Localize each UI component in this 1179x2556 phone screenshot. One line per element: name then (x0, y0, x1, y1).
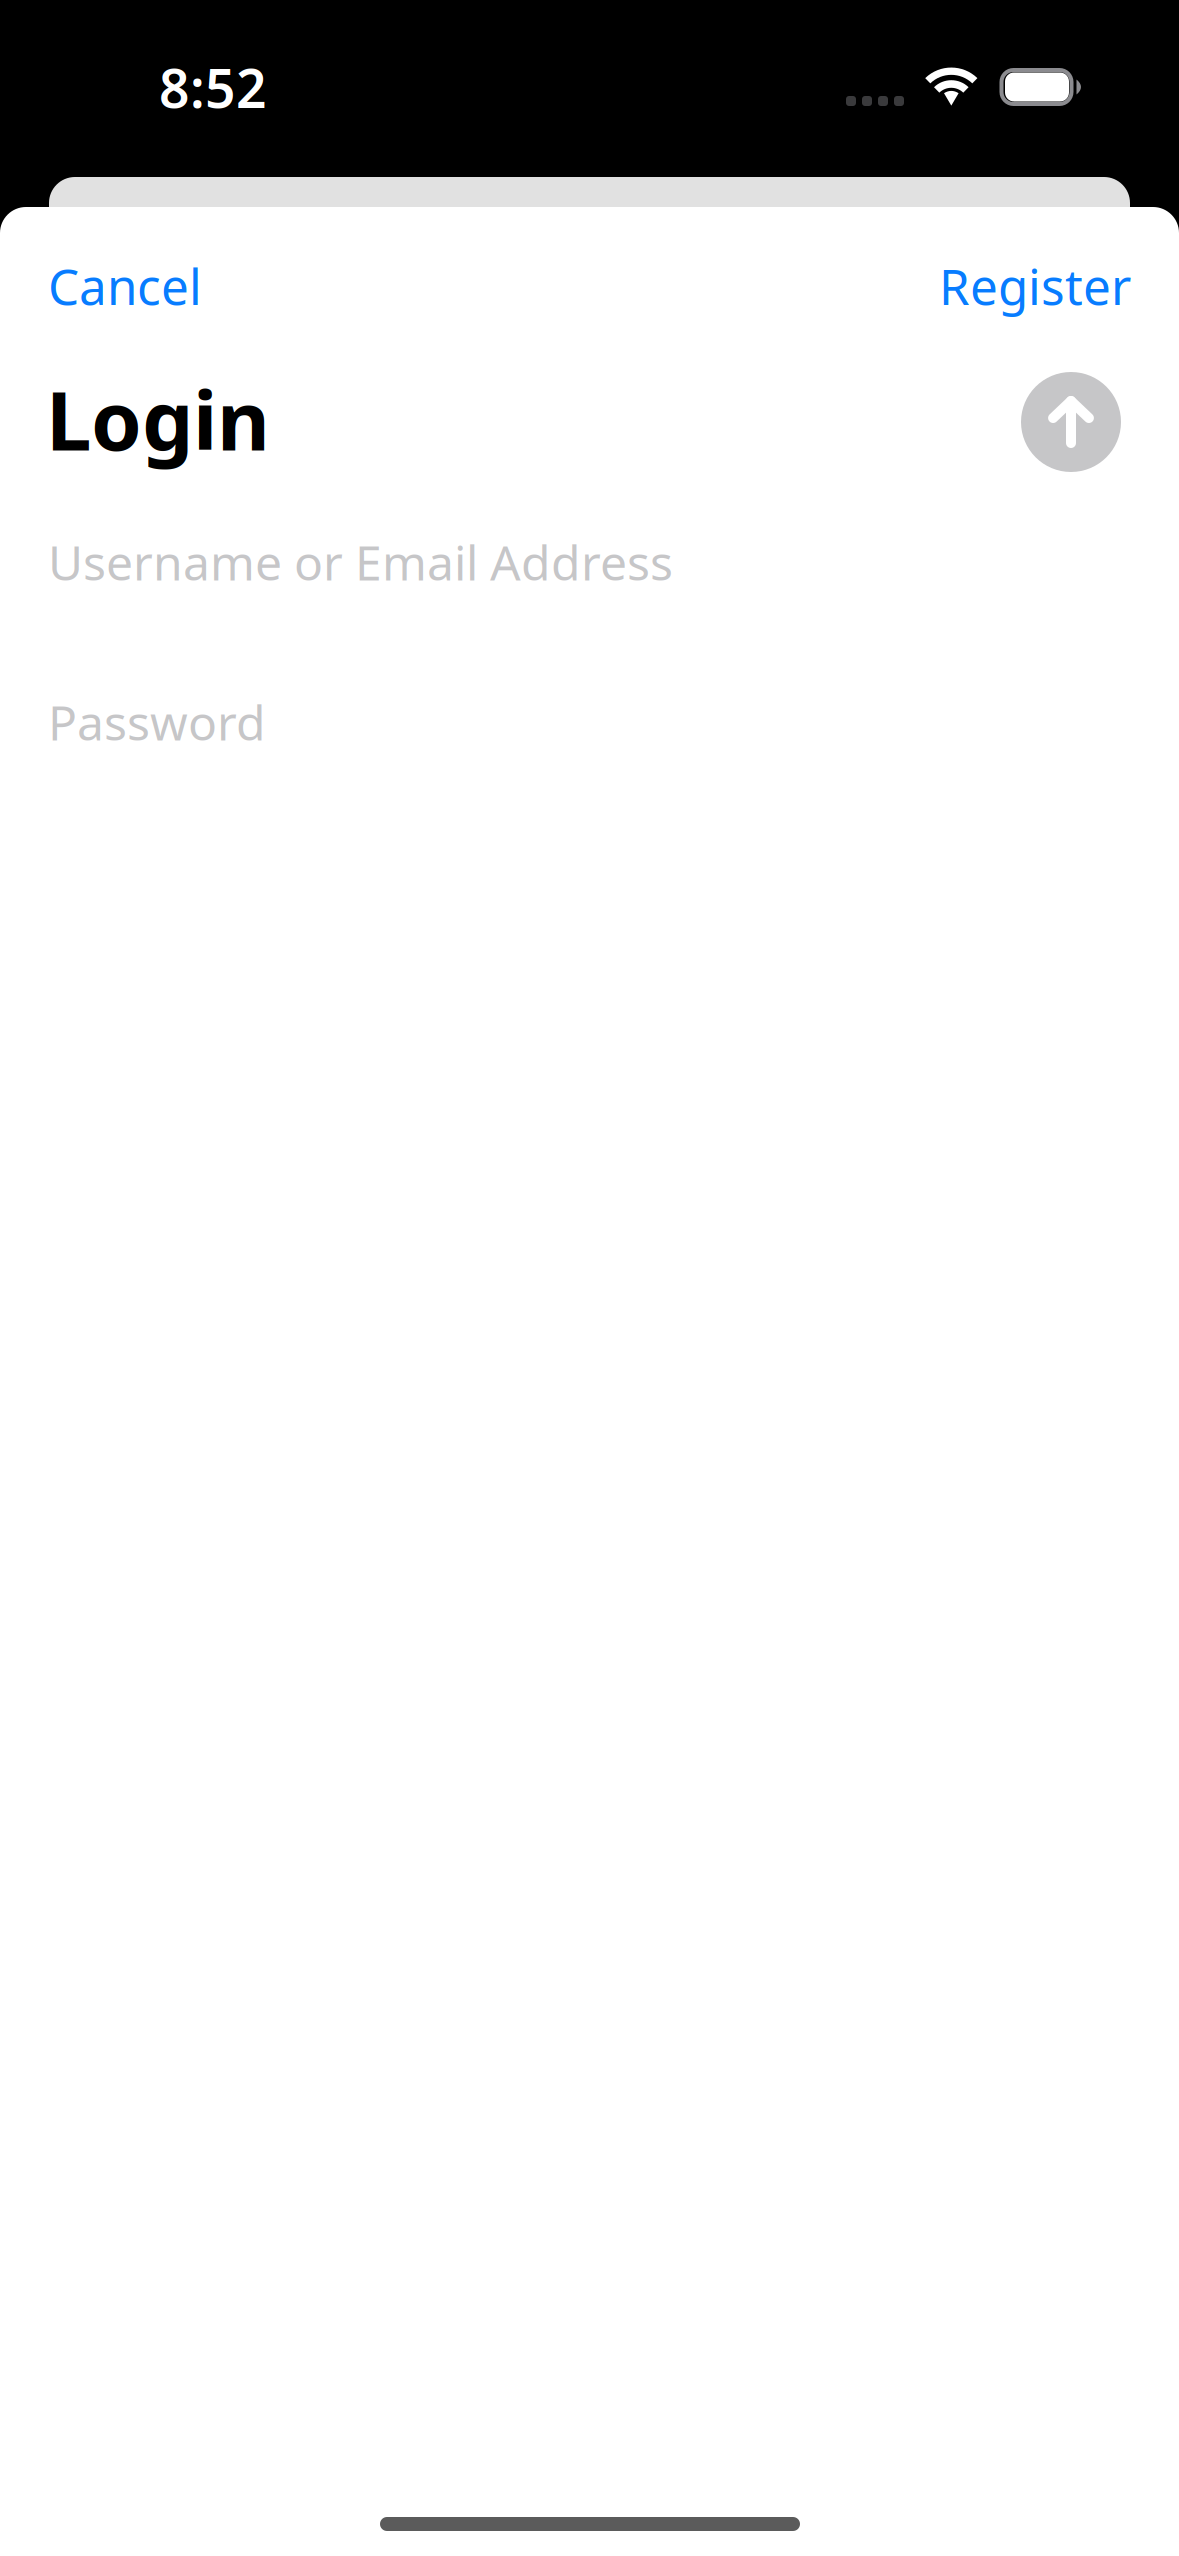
button[interactable]: Cancel (26, 239, 224, 332)
button[interactable]: Password (48, 657, 1131, 787)
staticText: Password (48, 690, 266, 754)
button[interactable]: Submit (1021, 372, 1121, 472)
staticText: Register (939, 253, 1131, 318)
button[interactable]: Register (908, 239, 1153, 332)
staticText: Login (46, 365, 270, 473)
staticText: 8:52 (159, 52, 267, 123)
staticText: Cancel (48, 253, 202, 318)
staticText: Username or Email Address (48, 530, 673, 594)
button[interactable]: Username or Email Address (48, 497, 1131, 627)
